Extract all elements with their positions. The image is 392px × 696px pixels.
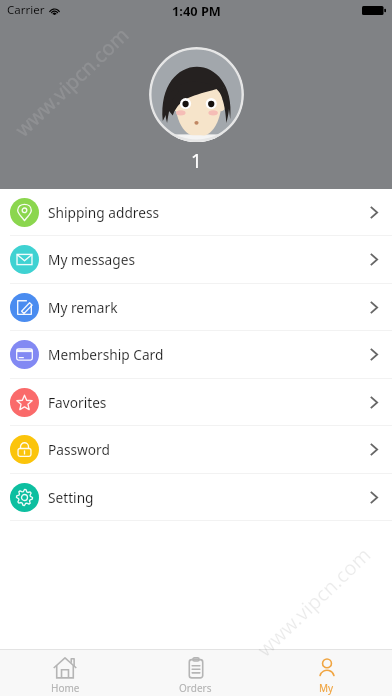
button[interactable]: Profile photo	[149, 47, 244, 142]
staticText: Setting	[48, 488, 94, 507]
staticText: Carrier	[7, 2, 45, 18]
staticText: Orders	[179, 681, 212, 695]
staticText: My	[319, 681, 334, 695]
staticText: Favorites	[48, 393, 107, 412]
staticText: My remark	[48, 298, 118, 317]
button[interactable]: Password	[0, 426, 392, 473]
button[interactable]: Setting	[0, 474, 392, 520]
button[interactable]: Shipping address	[0, 189, 392, 235]
staticText: 1	[191, 148, 202, 174]
staticText: Shipping address	[48, 203, 160, 222]
staticText: Password	[48, 440, 110, 459]
button[interactable]: My messages	[0, 236, 392, 283]
button[interactable]: Orders	[130, 650, 261, 696]
staticText: Membership Card	[48, 345, 164, 364]
staticText: My messages	[48, 250, 135, 269]
button[interactable]: Favorites	[0, 379, 392, 425]
button[interactable]: My remark	[0, 284, 392, 330]
button[interactable]: Home	[0, 650, 130, 696]
staticText: Home	[51, 681, 80, 695]
staticText: 1:40 PM	[172, 2, 221, 19]
button[interactable]: Membership Card	[0, 331, 392, 378]
button[interactable]: My	[261, 650, 392, 696]
staticText: www.vipcn.com	[251, 541, 377, 662]
